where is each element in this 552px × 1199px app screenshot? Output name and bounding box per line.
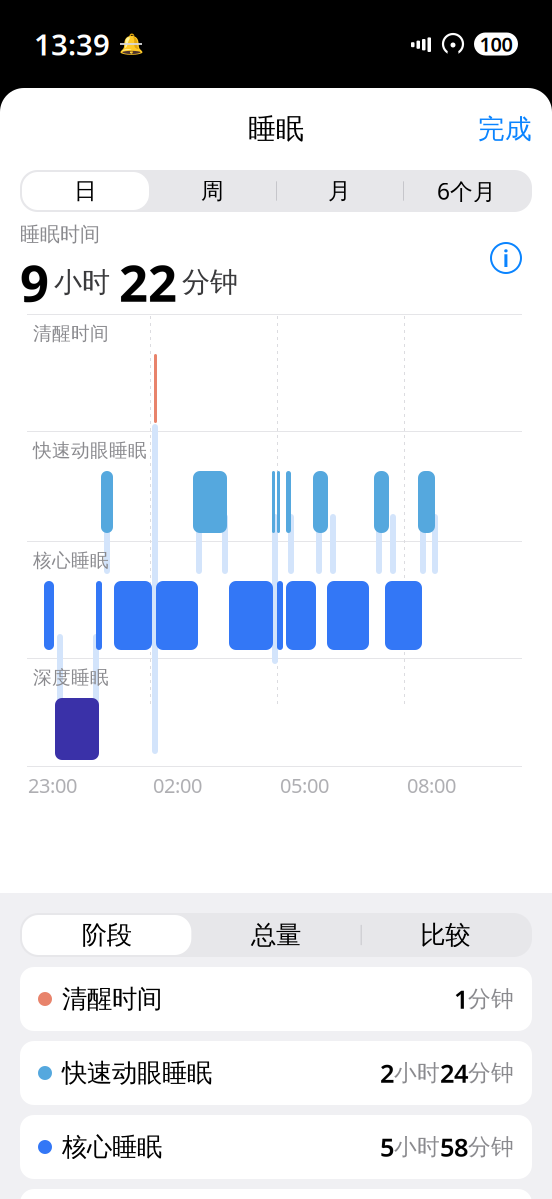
staticText: 分钟 — [182, 265, 238, 299]
staticText: 24 — [440, 1056, 468, 1090]
staticText: 13:39 — [34, 24, 110, 63]
button[interactable]: 周 — [149, 170, 276, 212]
staticText: 月 — [328, 177, 351, 205]
staticText: 小时 — [394, 1059, 440, 1087]
staticText: i — [502, 242, 509, 274]
button[interactable]: 关于睡眠时间 — [484, 236, 528, 280]
staticText: 9 — [20, 249, 49, 316]
button[interactable]: 月 — [276, 170, 403, 212]
staticText: 深度睡眠 — [33, 666, 109, 689]
staticText: 核心睡眠 — [33, 549, 109, 572]
staticText: 🔔 — [118, 33, 143, 55]
button[interactable]: 核心睡眠 — [20, 1115, 532, 1179]
staticText: 1 — [454, 982, 468, 1016]
button[interactable]: 总量 — [191, 913, 361, 957]
staticText: 清醒时间 — [33, 322, 109, 345]
staticText: 05:00 — [280, 772, 329, 799]
staticText: 08:00 — [407, 772, 456, 799]
staticText: 小时 — [394, 1133, 440, 1161]
staticText: 核心睡眠 — [62, 1131, 162, 1162]
staticText: 分钟 — [468, 985, 514, 1013]
staticText: 清醒时间 — [62, 983, 162, 1014]
staticText: 周 — [201, 177, 224, 205]
button[interactable]: 日 — [22, 170, 149, 212]
staticText: 6个月 — [437, 176, 496, 206]
staticText: 23:00 — [28, 772, 77, 799]
staticText: 快速动眼睡眠 — [62, 1057, 212, 1088]
staticText: 比较 — [420, 919, 470, 950]
button[interactable]: 6个月 — [403, 170, 530, 212]
staticText: 睡眠 — [248, 112, 304, 146]
staticText: 分钟 — [468, 1133, 514, 1161]
staticText: 阶段 — [82, 919, 132, 950]
button[interactable]: 比较 — [361, 913, 530, 957]
staticText: 5 — [380, 1130, 394, 1164]
staticText: 完成 — [478, 113, 532, 145]
staticText: 日 — [74, 177, 97, 205]
staticText: 分钟 — [468, 1059, 514, 1087]
staticText: 睡眠时间 — [20, 222, 100, 247]
button[interactable]: 快速动眼睡眠 — [20, 1041, 532, 1105]
staticText: 总量 — [251, 919, 301, 950]
staticText: 小时 — [54, 265, 110, 299]
staticText: 快速动眼睡眠 — [33, 439, 147, 462]
staticText: 2025年12月7日 — [20, 318, 180, 348]
staticText: 58 — [440, 1130, 468, 1164]
button[interactable]: 完成 — [442, 102, 532, 156]
button[interactable]: 清醒时间 — [20, 967, 532, 1031]
staticText: 100 — [479, 31, 512, 57]
staticText: 22 — [119, 249, 177, 316]
staticText: 2 — [380, 1056, 394, 1090]
button[interactable]: 阶段 — [22, 913, 191, 957]
staticText: 02:00 — [153, 772, 202, 799]
